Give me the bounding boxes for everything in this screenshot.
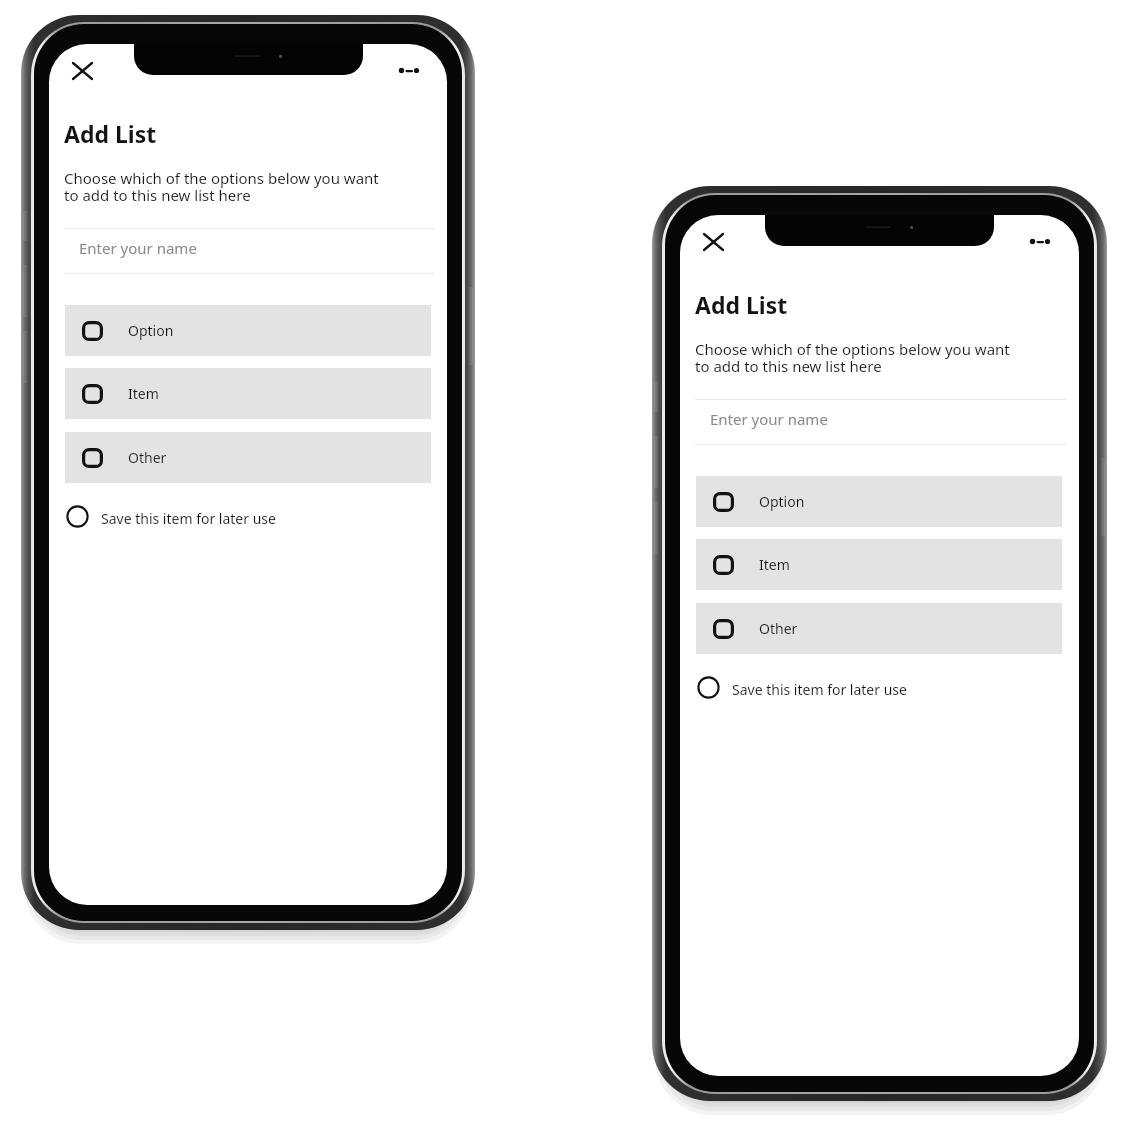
button[interactable]: Other bbox=[65, 432, 431, 483]
button[interactable]: Other bbox=[696, 603, 1062, 654]
staticText: Item bbox=[759, 555, 790, 574]
staticText: to add to this new list here bbox=[695, 356, 882, 376]
button[interactable]: Option bbox=[65, 305, 431, 356]
button[interactable]: More options bbox=[1028, 233, 1058, 250]
staticText: Add List bbox=[695, 289, 788, 320]
staticText: Save this item for later use bbox=[101, 509, 276, 528]
staticText: Other bbox=[128, 448, 167, 467]
button[interactable]: Option bbox=[696, 476, 1062, 527]
staticText: Item bbox=[128, 384, 159, 403]
staticText: to add to this new list here bbox=[64, 185, 251, 205]
staticText: Save this item for later use bbox=[732, 680, 907, 699]
button[interactable]: Item bbox=[696, 539, 1062, 590]
staticText: Choose which of the options below you wa… bbox=[695, 339, 1010, 359]
staticText: Other bbox=[759, 619, 798, 638]
button[interactable]: Enter your name bbox=[64, 228, 435, 274]
button[interactable]: Close bbox=[698, 228, 729, 256]
staticText: Add List bbox=[64, 118, 157, 149]
staticText: Enter your name bbox=[710, 409, 828, 429]
button[interactable]: More options bbox=[397, 62, 427, 79]
button[interactable]: Save this item for later use bbox=[695, 672, 935, 702]
button[interactable]: Item bbox=[65, 368, 431, 419]
staticText: Choose which of the options below you wa… bbox=[64, 168, 379, 188]
staticText: Option bbox=[128, 321, 174, 340]
button[interactable]: Close bbox=[67, 57, 98, 85]
button[interactable]: Save this item for later use bbox=[64, 501, 304, 531]
button[interactable]: Enter your name bbox=[695, 399, 1066, 445]
staticText: Enter your name bbox=[79, 238, 197, 258]
staticText: Option bbox=[759, 492, 805, 511]
